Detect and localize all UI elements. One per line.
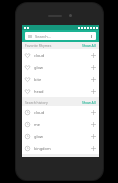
button[interactable]: Show All: [82, 43, 96, 48]
staticText: bite: [34, 77, 42, 82]
button[interactable]: Add kingdom: [90, 145, 96, 151]
button[interactable]: head: [22, 85, 99, 97]
button[interactable]: Add head: [90, 88, 96, 94]
button[interactable]: Add glow: [90, 133, 96, 139]
staticText: Search...: [35, 34, 51, 39]
button[interactable]: Add cloud: [90, 52, 96, 58]
button[interactable]: kingdom: [22, 142, 99, 154]
button[interactable]: glow: [22, 130, 99, 142]
button[interactable]: bite: [22, 73, 99, 85]
staticText: Show All: [82, 43, 96, 48]
staticText: head: [34, 89, 44, 94]
button[interactable]: Add bite: [90, 76, 96, 82]
staticText: Favorite Rhymes: [25, 43, 52, 48]
staticText: me: [34, 122, 40, 127]
button[interactable]: cloud: [22, 49, 99, 61]
button[interactable]: Add cloud: [90, 109, 96, 115]
button[interactable]: More options: [89, 34, 94, 39]
staticText: kingdom: [34, 146, 51, 151]
staticText: glow: [34, 134, 43, 139]
staticText: Search history: [25, 100, 48, 105]
button[interactable]: cloud: [22, 106, 99, 118]
button[interactable]: Add me: [90, 121, 96, 127]
button[interactable]: Show All: [82, 100, 96, 105]
button[interactable]: me: [22, 118, 99, 130]
button[interactable]: Menu: [27, 34, 32, 39]
button[interactable]: Menu: [25, 32, 96, 40]
button[interactable]: glow: [22, 61, 99, 73]
staticText: Show All: [82, 100, 96, 105]
staticText: glow: [34, 65, 43, 70]
button[interactable]: Add glow: [90, 64, 96, 70]
staticText: cloud: [34, 110, 45, 115]
staticText: cloud: [34, 53, 45, 58]
